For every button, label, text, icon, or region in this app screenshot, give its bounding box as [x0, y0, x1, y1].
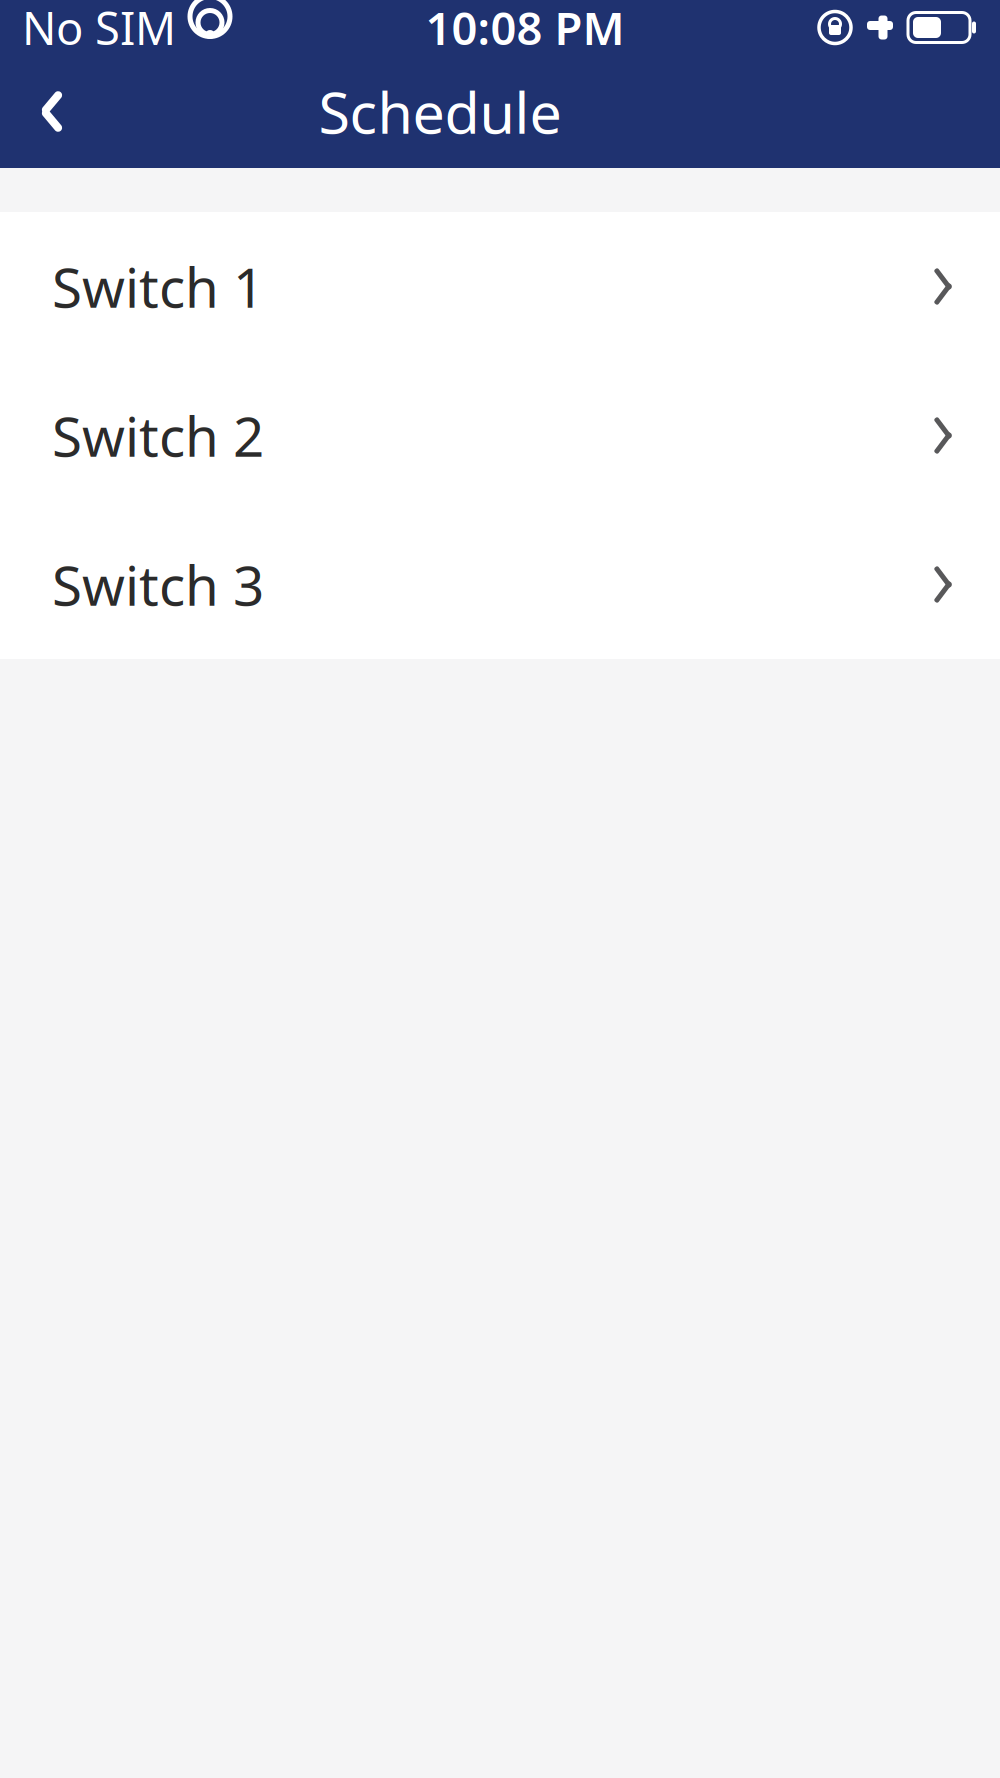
- staticText: Switch 2: [52, 399, 264, 472]
- staticText: 10:08 PM: [425, 0, 624, 58]
- button[interactable]: Switch 2: [0, 361, 1000, 510]
- button[interactable]: Back: [14, 73, 90, 149]
- staticText: Switch 1: [52, 250, 264, 323]
- button[interactable]: Switch 1: [0, 212, 1000, 361]
- staticText: Schedule: [318, 73, 561, 149]
- staticText: Switch 3: [52, 548, 264, 621]
- staticText: No SIM: [22, 0, 176, 58]
- button[interactable]: Switch 3: [0, 510, 1000, 659]
